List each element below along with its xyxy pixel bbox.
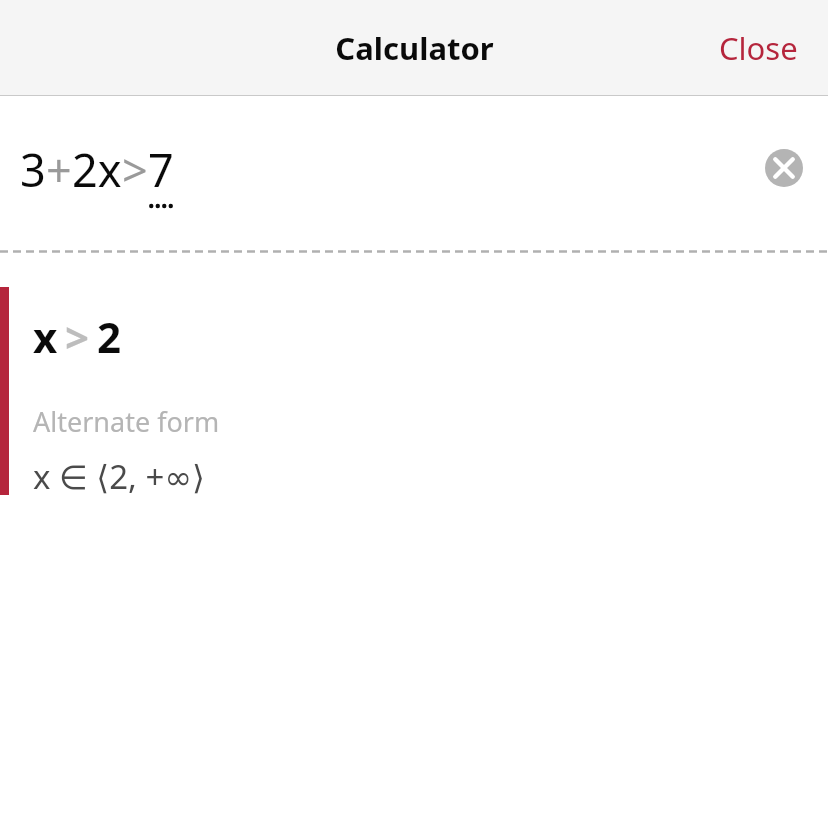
button[interactable]: Clear expression [752, 136, 816, 200]
staticText: + [46, 139, 72, 200]
staticText: Calculator [335, 27, 494, 69]
staticText: 2 [97, 308, 122, 365]
staticText: 3 [20, 139, 46, 200]
staticText: x [33, 308, 58, 365]
staticText: 2x [72, 139, 122, 200]
staticText: > [65, 308, 90, 365]
button[interactable]: x [0, 287, 828, 495]
staticText: > [122, 139, 148, 200]
staticText: Alternate form [33, 403, 220, 440]
button[interactable]: 3 [0, 96, 828, 250]
staticText: Close [719, 27, 798, 69]
button[interactable]: Close [713, 19, 804, 77]
staticText: 7 [148, 139, 174, 200]
staticText: x ∈ ⟨2, +∞⟩ [33, 454, 205, 495]
